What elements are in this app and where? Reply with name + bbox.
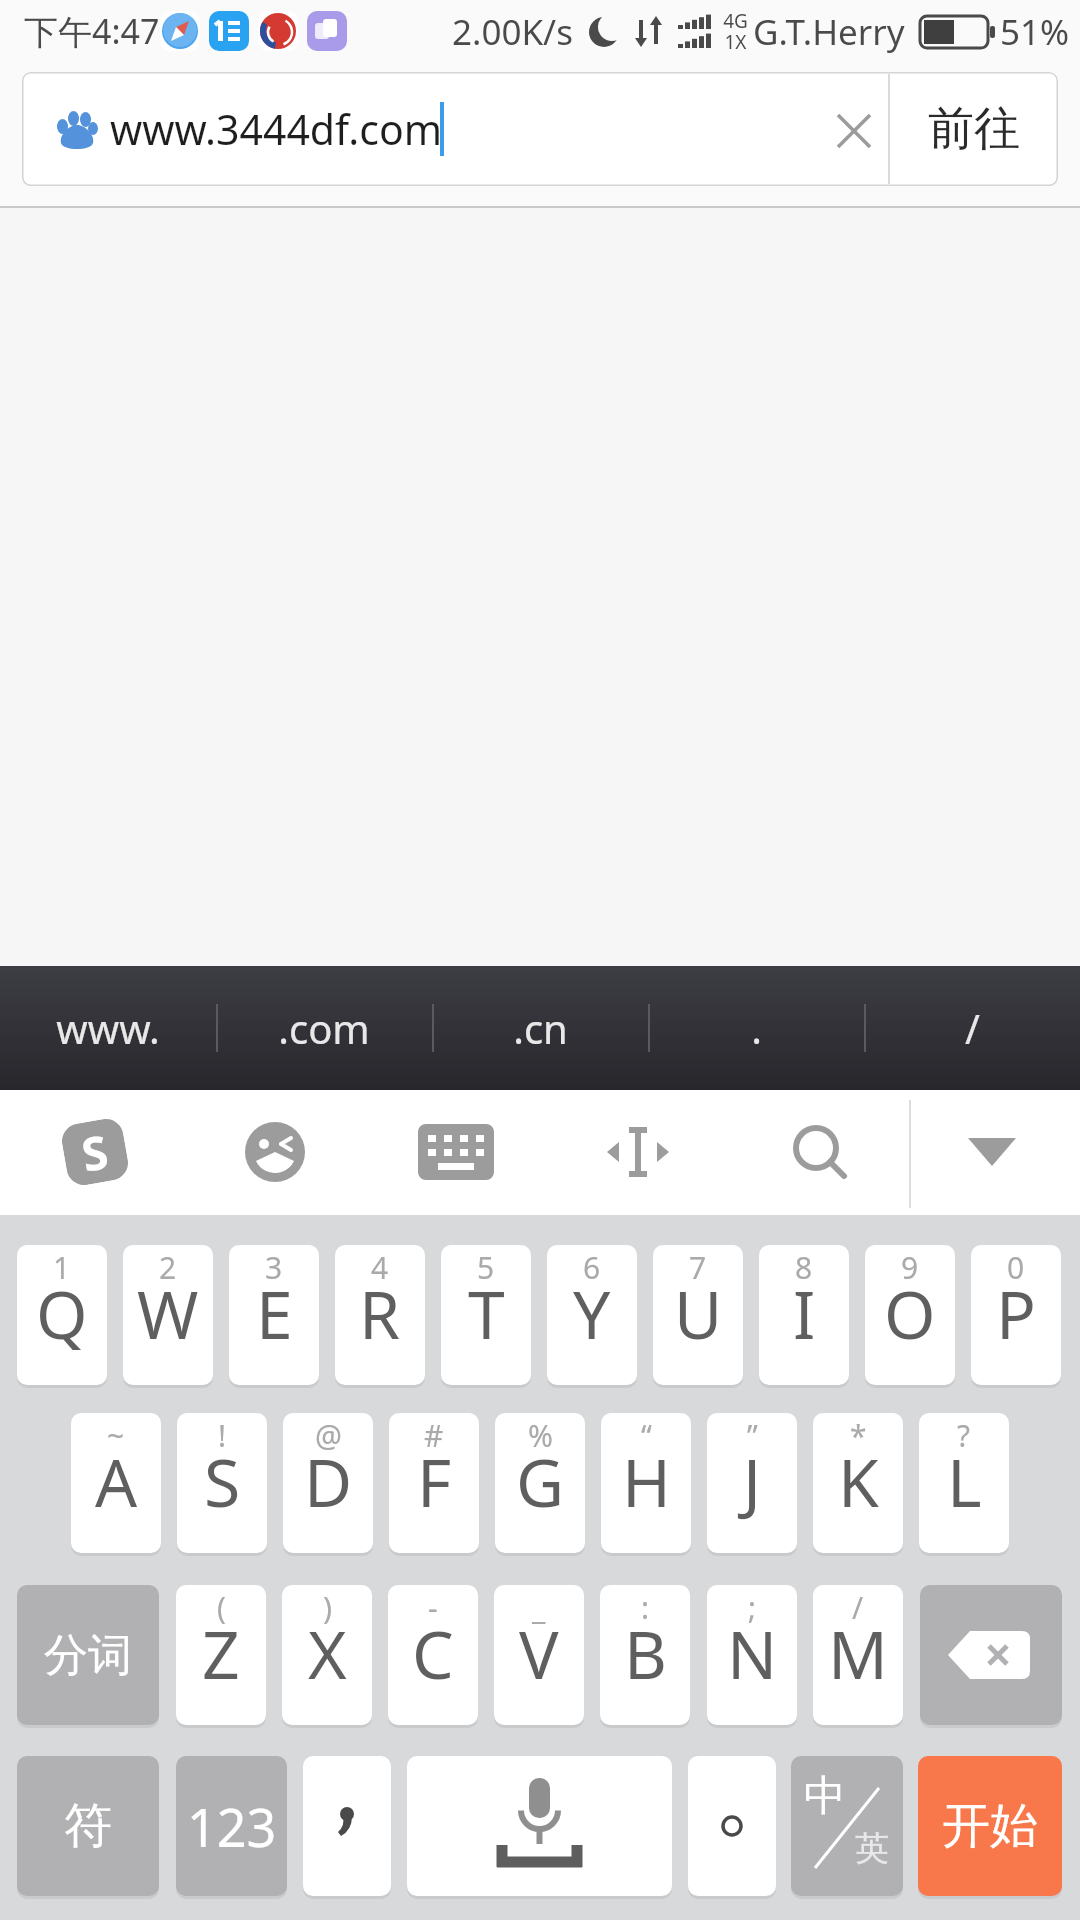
- staticText: 6: [583, 1247, 601, 1288]
- staticText: F: [417, 1436, 452, 1526]
- staticText: 2.00K/s: [452, 8, 573, 54]
- staticText: ~: [107, 1415, 125, 1456]
- staticText: 8: [795, 1247, 813, 1288]
- staticText: 7: [689, 1247, 707, 1288]
- staticText: V: [519, 1608, 559, 1698]
- staticText: S: [204, 1436, 241, 1526]
- staticText: 中: [804, 1770, 846, 1823]
- staticText: www.3444df.com: [110, 101, 443, 157]
- staticText: 2: [159, 1247, 177, 1288]
- staticText: %: [528, 1415, 553, 1456]
- staticText: L: [947, 1436, 982, 1526]
- staticText: ): [323, 1587, 332, 1628]
- staticText: /: [852, 1587, 864, 1628]
- staticText: Y: [573, 1268, 611, 1358]
- staticText: 符: [64, 1796, 112, 1856]
- staticText: “: [641, 1415, 652, 1456]
- staticText: .com: [278, 1001, 370, 1055]
- staticText: Z: [202, 1608, 240, 1698]
- staticText: 51%: [1000, 8, 1070, 54]
- staticText: P: [996, 1268, 1036, 1358]
- staticText: W: [137, 1268, 199, 1358]
- staticText: 1: [53, 1247, 71, 1288]
- staticText: ”: [747, 1415, 758, 1456]
- staticText: 4G 1X: [723, 8, 748, 54]
- staticText: 3: [265, 1247, 283, 1288]
- staticText: 4: [371, 1247, 389, 1288]
- staticText: J: [743, 1436, 762, 1526]
- staticText: B: [624, 1608, 667, 1698]
- staticText: 下午4:47: [24, 8, 160, 54]
- staticText: O: [884, 1268, 936, 1358]
- staticText: T: [468, 1268, 505, 1358]
- staticText: N: [727, 1608, 778, 1698]
- staticText: G.T.Herry: [753, 8, 905, 54]
- staticText: I: [793, 1268, 816, 1358]
- staticText: @: [315, 1415, 342, 1456]
- staticText: Q: [36, 1268, 88, 1358]
- staticText: C: [412, 1608, 454, 1698]
- staticText: ;: [748, 1587, 757, 1628]
- staticText: *: [850, 1415, 867, 1456]
- staticText: 5: [477, 1247, 495, 1288]
- staticText: 0: [1007, 1247, 1025, 1288]
- staticText: K: [838, 1436, 879, 1526]
- staticText: A: [95, 1436, 138, 1526]
- staticText: (: [217, 1587, 226, 1628]
- staticText: #: [424, 1415, 444, 1456]
- staticText: !: [218, 1415, 227, 1456]
- staticText: ?: [957, 1415, 971, 1456]
- staticText: S: [77, 1119, 113, 1185]
- staticText: /: [965, 1001, 980, 1055]
- staticText: H: [622, 1436, 671, 1526]
- staticText: .: [751, 1001, 762, 1055]
- staticText: M: [828, 1608, 888, 1698]
- staticText: -: [428, 1587, 438, 1628]
- staticText: 前往: [928, 100, 1020, 158]
- staticText: 分词: [44, 1628, 132, 1683]
- staticText: U: [674, 1268, 723, 1358]
- staticText: 英: [855, 1827, 889, 1870]
- staticText: D: [304, 1436, 353, 1526]
- staticText: .cn: [513, 1001, 568, 1055]
- staticText: 123: [187, 1791, 277, 1862]
- staticText: www.: [56, 1001, 160, 1055]
- staticText: 9: [901, 1247, 919, 1288]
- staticText: 开始: [942, 1796, 1038, 1856]
- staticText: :: [641, 1587, 650, 1628]
- staticText: G: [516, 1436, 565, 1526]
- staticText: R: [359, 1268, 401, 1358]
- staticText: X: [308, 1608, 347, 1698]
- staticText: _: [532, 1587, 546, 1628]
- staticText: E: [256, 1268, 293, 1358]
